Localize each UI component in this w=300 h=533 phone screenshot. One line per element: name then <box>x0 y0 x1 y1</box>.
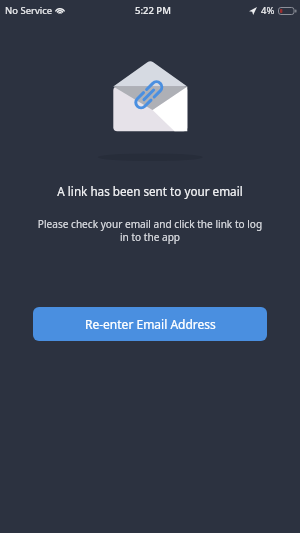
button[interactable]: Re-enter Email Address <box>33 307 267 341</box>
staticText: A link has been sent to your email <box>57 183 243 199</box>
staticText: 5:22 PM <box>135 4 171 17</box>
staticText: 4% <box>261 4 275 17</box>
staticText: Re-enter Email Address <box>85 316 216 332</box>
staticText: No Service <box>5 4 53 17</box>
staticText: Please check your email and click the li… <box>0 217 300 244</box>
